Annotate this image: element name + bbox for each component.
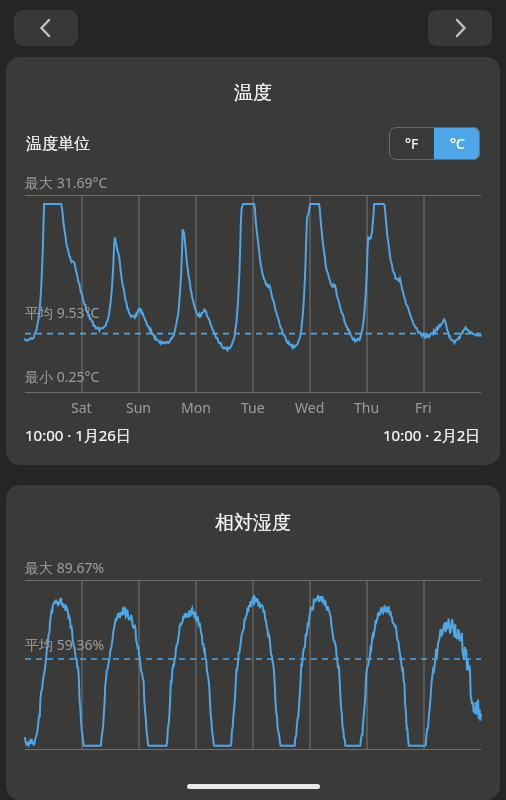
staticText: 温度 xyxy=(6,81,500,105)
button[interactable]: °C xyxy=(434,127,480,160)
staticText: 10:00 · 2月2日 xyxy=(383,425,481,445)
staticText: 10:00 · 1月26日 xyxy=(25,425,131,445)
staticText: Sat xyxy=(71,398,92,417)
staticText: 最小 0.25°C xyxy=(25,367,100,386)
staticText: Sun xyxy=(126,398,151,417)
staticText: 平均 59.36% xyxy=(25,635,105,654)
staticText: 温度単位 xyxy=(26,134,90,154)
staticText: Thu xyxy=(354,398,380,417)
staticText: Tue xyxy=(241,398,265,417)
staticText: 最大 31.69°C xyxy=(25,173,108,192)
staticText: Wed xyxy=(295,398,325,417)
button[interactable]: Next xyxy=(428,10,492,46)
staticText: °C xyxy=(450,134,465,153)
staticText: 平均 9.53°C xyxy=(25,303,100,322)
button[interactable]: 温度 xyxy=(6,57,500,465)
staticText: Mon xyxy=(181,398,211,417)
button[interactable]: 相対湿度 xyxy=(6,485,500,800)
button[interactable]: Previous xyxy=(14,10,78,46)
button[interactable]: °F xyxy=(389,127,434,160)
staticText: 最大 89.67% xyxy=(25,558,105,577)
staticText: 相対湿度 xyxy=(6,511,500,535)
staticText: Fri xyxy=(415,398,432,417)
staticText: °F xyxy=(405,134,419,153)
